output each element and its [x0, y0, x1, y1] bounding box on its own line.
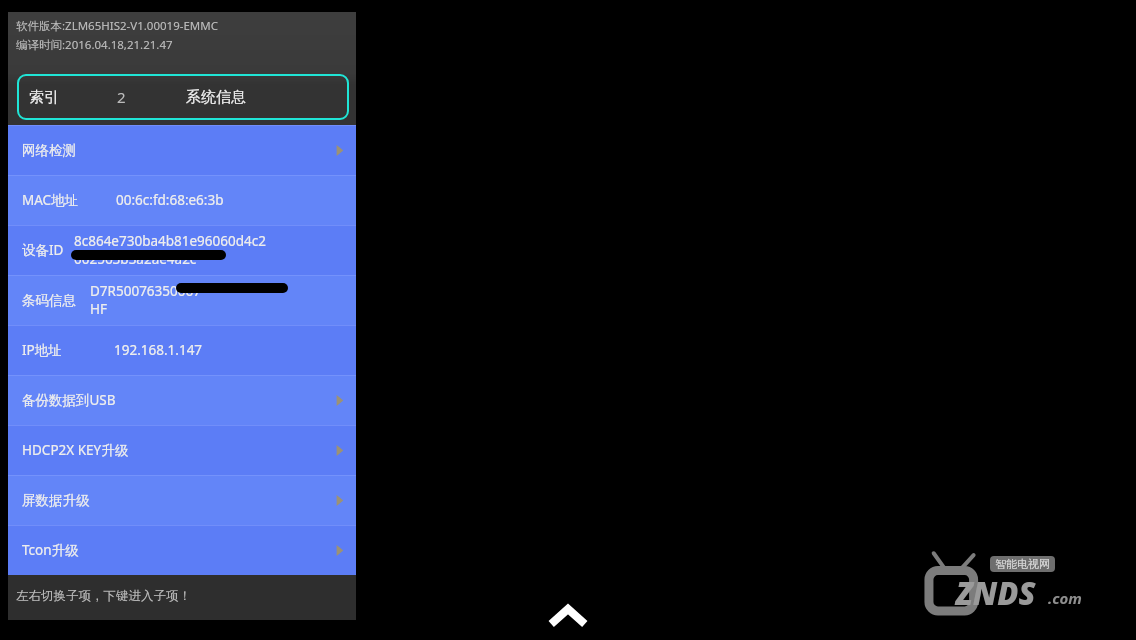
staticText: 智能电视网 [995, 557, 1050, 571]
staticText: MAC地址 [22, 191, 79, 209]
staticText: HF [90, 300, 108, 318]
staticText: 系统信息 [186, 88, 246, 107]
staticText: 2 [117, 87, 126, 107]
button[interactable]: 备份数据到USB [8, 375, 356, 425]
staticText: 设备ID [22, 241, 64, 259]
button[interactable]: 索引 [17, 74, 349, 120]
staticText: D7R50076350067 [90, 282, 201, 300]
staticText: 编译时间:2016.04.18,21.21.47 [16, 37, 173, 53]
button[interactable]: HDCP2X KEY升级 [8, 425, 356, 475]
button[interactable]: IP地址 [8, 325, 356, 375]
staticText: 备份数据到USB [22, 391, 116, 409]
button[interactable]: Tcon升级 [8, 525, 356, 575]
button[interactable]: 网络检测 [8, 125, 356, 175]
staticText: ZNDS [956, 572, 1036, 614]
button[interactable]: 屏数据升级 [8, 475, 356, 525]
button[interactable]: MAC地址 [8, 175, 356, 225]
staticText: 网络检测 [22, 142, 76, 159]
button[interactable]: 设备ID [8, 225, 356, 275]
staticText: IP地址 [22, 341, 62, 359]
staticText: 00:6c:fd:68:e6:3b [116, 191, 224, 209]
button[interactable]: 条码信息 [8, 275, 356, 325]
staticText: 8c864e730ba4b81e96060d4c2 [74, 232, 266, 250]
staticText: 左右切换子项，下键进入子项！ [16, 588, 191, 604]
staticText: 192.168.1.147 [114, 341, 203, 359]
staticText: Tcon升级 [22, 541, 79, 559]
staticText: 002563b3a2ae4a2c [74, 250, 197, 268]
button[interactable]: Scroll up [544, 598, 592, 634]
staticText: 软件版本:ZLM65HIS2-V1.00019-EMMC [16, 18, 218, 34]
staticText: 索引 [29, 88, 59, 107]
staticText: 屏数据升级 [22, 492, 90, 509]
staticText: 条码信息 [22, 292, 76, 309]
staticText: HDCP2X KEY升级 [22, 441, 129, 459]
staticText: .com [1048, 588, 1082, 608]
